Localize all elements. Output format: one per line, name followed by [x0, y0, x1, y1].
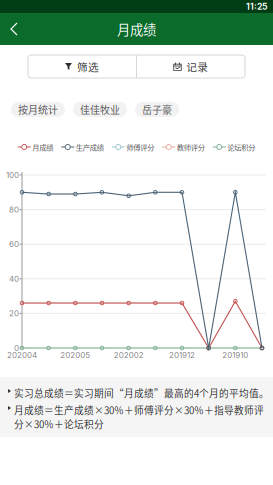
staticText: 实习总成绩＝实习期间“月成绩”最高的4个月的平均值。 [14, 386, 269, 400]
button[interactable]: Back [0, 13, 30, 45]
staticText: 201912 [169, 350, 195, 360]
staticText: 教师评分 [177, 142, 205, 152]
staticText: 11:25 [246, 1, 268, 12]
button[interactable]: 筛选 [28, 55, 136, 78]
button[interactable]: 按月统计 [11, 102, 65, 117]
button[interactable]: 记录 [137, 55, 245, 78]
staticText: 202005 [60, 350, 90, 360]
staticText: 20 [9, 309, 19, 318]
staticText: 0 [14, 343, 19, 353]
staticText: 月成绩 [32, 142, 53, 152]
staticText: 生产成绩 [76, 142, 104, 152]
staticText: 佳佳牧业 [80, 102, 120, 117]
button[interactable]: 岳子豪 [135, 102, 179, 117]
button[interactable]: 佳佳牧业 [73, 102, 127, 117]
staticText: 202002 [114, 350, 144, 360]
staticText: 月成绩＝生产成绩×30％＋师傅评分×30％＋指导教师评分×30％＋论坛积分 [14, 403, 264, 431]
staticText: 岳子豪 [142, 102, 172, 117]
staticText: 师傅评分 [126, 142, 154, 152]
staticText: 202004 [7, 350, 37, 360]
staticText: 60 [9, 239, 19, 249]
staticText: 40 [9, 274, 19, 284]
staticText: 80 [9, 205, 19, 214]
staticText: 论坛积分 [227, 142, 255, 152]
staticText: 100 [6, 170, 19, 180]
staticText: 月成绩 [117, 19, 156, 39]
staticText: 201910 [222, 350, 248, 360]
staticText: 按月统计 [18, 102, 58, 117]
staticText: 筛选 [77, 59, 99, 74]
staticText: 记录 [186, 59, 208, 74]
